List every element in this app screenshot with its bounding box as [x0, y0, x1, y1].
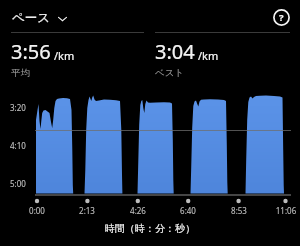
button[interactable]: 3:56: [11, 38, 141, 79]
staticText: /km: [54, 48, 75, 63]
staticText: 平均: [11, 67, 30, 79]
staticText: 3:56: [11, 38, 51, 65]
staticText: 0:00: [22, 205, 52, 216]
staticText: 5:00: [10, 178, 34, 189]
staticText: 3:20: [10, 102, 34, 113]
button[interactable]: ヘルプ: [270, 6, 293, 29]
staticText: /km: [198, 48, 219, 63]
staticText: 8:53: [224, 205, 254, 216]
button[interactable]: ペース: [11, 9, 69, 27]
staticText: 6:40: [173, 205, 203, 216]
staticText: 4:26: [123, 205, 153, 216]
button[interactable]: 3:04: [155, 38, 285, 79]
staticText: ペース: [12, 10, 51, 26]
staticText: 3:04: [155, 38, 195, 65]
staticText: ?: [279, 11, 284, 24]
staticText: 11:06: [271, 205, 300, 216]
staticText: 4:10: [10, 140, 34, 151]
staticText: ベスト: [155, 67, 185, 79]
staticText: 時間（時：分：秒）: [0, 222, 300, 235]
staticText: 2:13: [72, 205, 102, 216]
